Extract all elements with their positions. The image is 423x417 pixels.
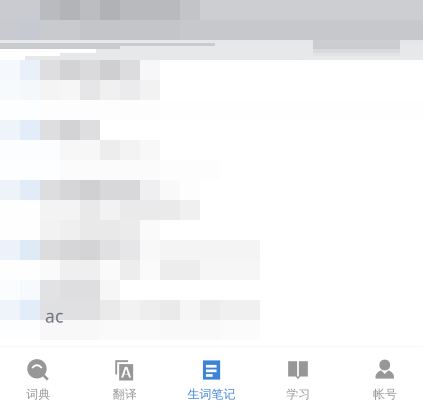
button[interactable]: 翻译	[81, 347, 168, 417]
staticText: 学习	[286, 387, 310, 402]
button[interactable]: 词典	[0, 347, 81, 417]
button[interactable]: 生词笔记	[168, 347, 255, 417]
staticText: ac	[45, 304, 63, 327]
staticText: 生词笔记	[188, 387, 236, 402]
staticText: 词典	[26, 387, 50, 402]
button[interactable]: 学习	[255, 347, 342, 417]
staticText: 翻译	[113, 387, 137, 402]
button[interactable]: 帐号	[342, 347, 423, 417]
staticText: 帐号	[373, 387, 397, 402]
